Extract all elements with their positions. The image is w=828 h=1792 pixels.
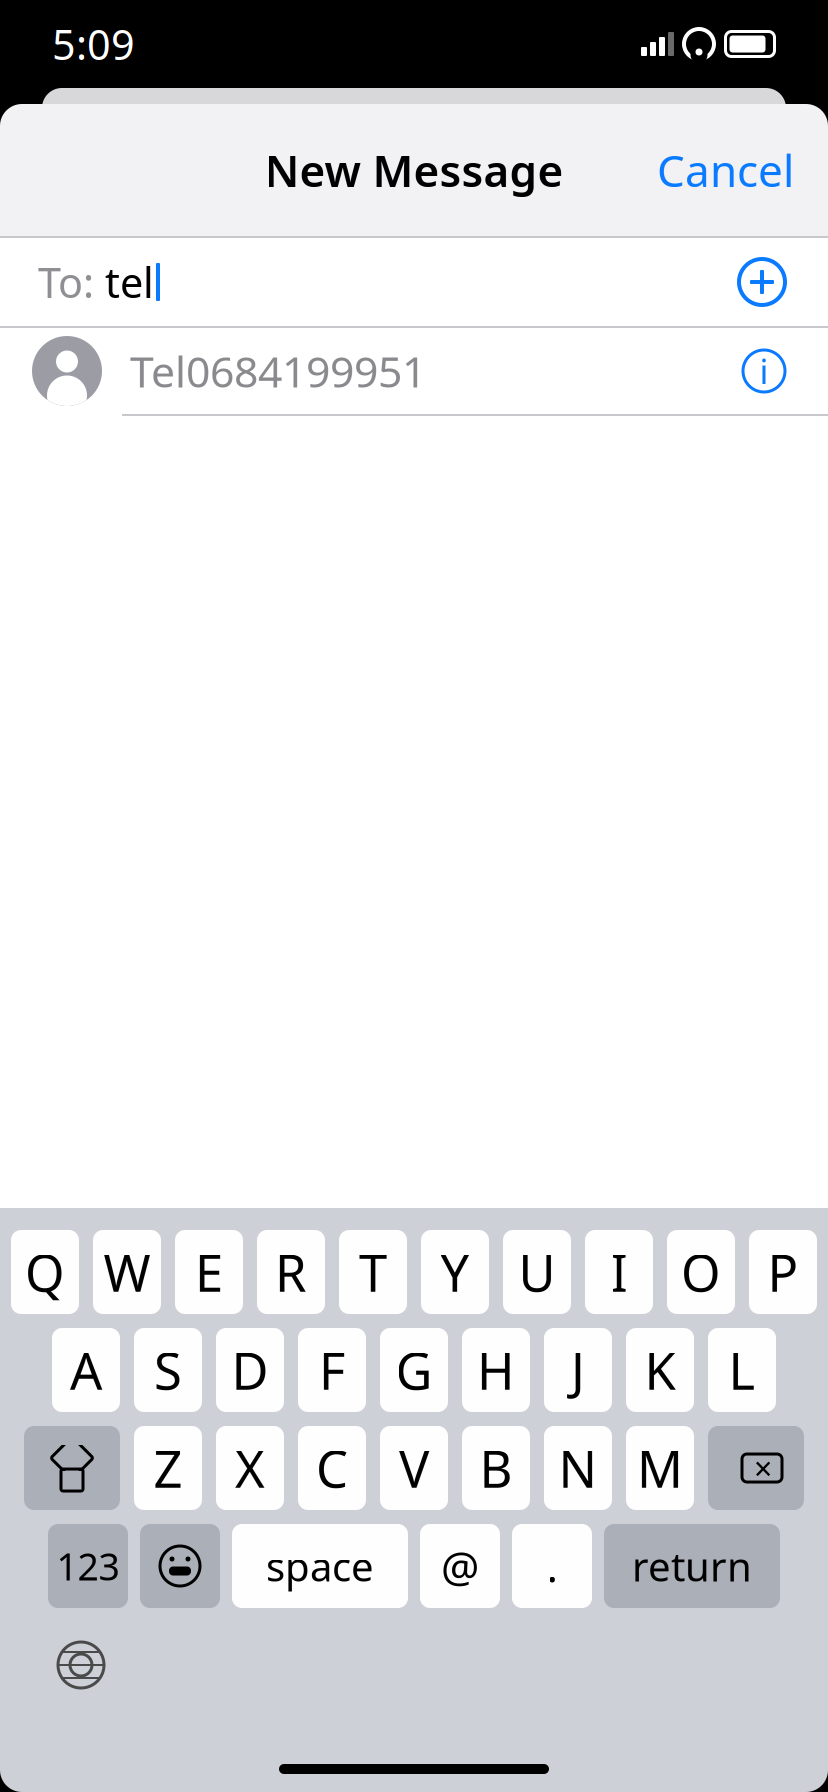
staticText: F: [319, 1336, 345, 1404]
button[interactable]: J: [544, 1328, 612, 1412]
staticText: I: [610, 1238, 627, 1306]
staticText: K: [644, 1336, 675, 1404]
staticText: H: [477, 1336, 515, 1404]
button[interactable]: Next keyboard: [46, 1630, 116, 1700]
staticText: Q: [25, 1238, 65, 1306]
staticText: V: [399, 1434, 429, 1502]
staticText: N: [558, 1434, 597, 1502]
staticText: U: [518, 1238, 555, 1306]
staticText: tel: [94, 255, 154, 309]
staticText: 5:09: [52, 17, 135, 71]
button[interactable]: G: [380, 1328, 448, 1412]
staticText: S: [154, 1336, 182, 1404]
staticText: X: [235, 1434, 265, 1502]
button[interactable]: N: [544, 1426, 612, 1510]
staticText: Y: [440, 1238, 469, 1306]
staticText: L: [728, 1336, 755, 1404]
staticText: P: [767, 1238, 798, 1306]
staticText: M: [637, 1434, 683, 1502]
staticText: Cancel: [657, 141, 794, 199]
staticText: space: [266, 1539, 374, 1592]
staticText: Z: [153, 1434, 182, 1502]
button[interactable]: C: [298, 1426, 366, 1510]
button[interactable]: Add contact: [722, 242, 802, 322]
button[interactable]: Z: [134, 1426, 202, 1510]
button[interactable]: R: [257, 1230, 325, 1314]
staticText: @: [441, 1538, 479, 1594]
staticText: To:: [38, 255, 94, 309]
button[interactable]: 123: [48, 1524, 128, 1608]
button[interactable]: A: [52, 1328, 120, 1412]
button[interactable]: P: [749, 1230, 817, 1314]
button[interactable]: space: [232, 1524, 408, 1608]
staticText: B: [479, 1434, 512, 1502]
button[interactable]: .: [512, 1524, 592, 1608]
staticText: G: [395, 1336, 432, 1404]
button[interactable]: Q: [11, 1230, 79, 1314]
button[interactable]: M: [626, 1426, 694, 1510]
staticText: E: [195, 1238, 223, 1306]
staticText: R: [275, 1238, 307, 1306]
button[interactable]: W: [93, 1230, 161, 1314]
button[interactable]: H: [462, 1328, 530, 1412]
button[interactable]: U: [503, 1230, 571, 1314]
button[interactable]: @: [420, 1524, 500, 1608]
staticText: ×: [754, 1447, 772, 1489]
staticText: C: [316, 1434, 348, 1502]
button[interactable]: Shift: [24, 1426, 120, 1510]
button[interactable]: return: [604, 1524, 780, 1608]
staticText: .: [546, 1538, 557, 1594]
button[interactable]: T: [339, 1230, 407, 1314]
button[interactable]: O: [667, 1230, 735, 1314]
staticText: J: [571, 1336, 585, 1404]
button[interactable]: L: [708, 1328, 776, 1412]
button[interactable]: Emoji: [140, 1524, 220, 1608]
button[interactable]: D: [216, 1328, 284, 1412]
button[interactable]: Tel0684199951: [0, 328, 828, 416]
button[interactable]: Cancel: [639, 129, 812, 211]
staticText: W: [103, 1238, 150, 1306]
button[interactable]: E: [175, 1230, 243, 1314]
button[interactable]: K: [626, 1328, 694, 1412]
button[interactable]: F: [298, 1328, 366, 1412]
staticText: Tel0684199951: [130, 343, 426, 399]
button[interactable]: I: [585, 1230, 653, 1314]
button[interactable]: B: [462, 1426, 530, 1510]
button[interactable]: Y: [421, 1230, 489, 1314]
staticText: T: [359, 1238, 387, 1306]
staticText: New Message: [264, 141, 563, 199]
button[interactable]: Delete: [708, 1426, 804, 1510]
staticText: A: [70, 1336, 102, 1404]
button[interactable]: V: [380, 1426, 448, 1510]
staticText: return: [632, 1539, 752, 1592]
staticText: D: [231, 1336, 268, 1404]
button[interactable]: X: [216, 1426, 284, 1510]
staticText: i: [759, 348, 768, 394]
staticText: O: [681, 1238, 721, 1306]
staticText: 123: [56, 1541, 119, 1591]
button[interactable]: S: [134, 1328, 202, 1412]
